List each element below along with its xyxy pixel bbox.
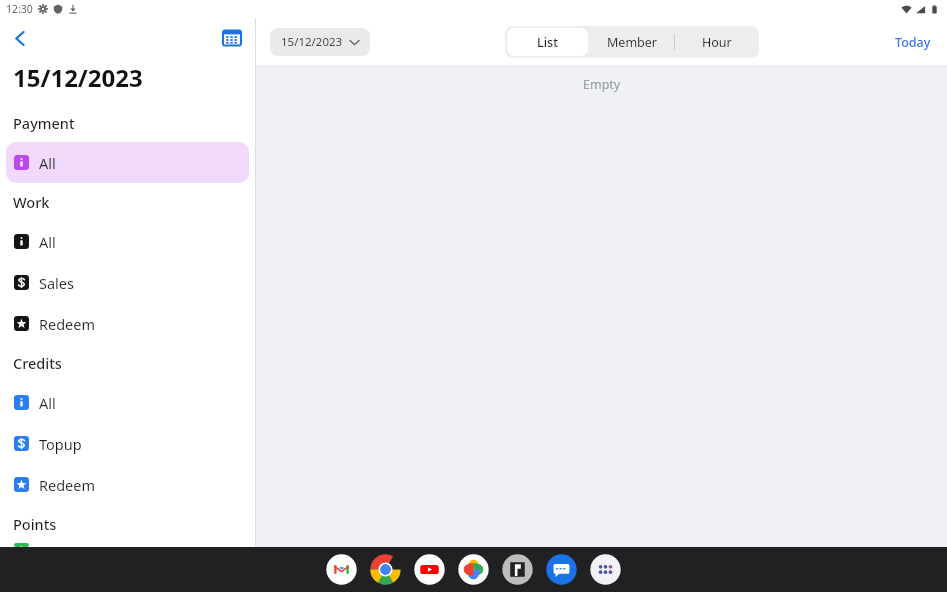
- button[interactable]: YouTube: [413, 553, 446, 586]
- button[interactable]: All: [6, 543, 249, 547]
- staticText: Empty: [583, 76, 621, 93]
- button[interactable]: All: [6, 221, 249, 262]
- button[interactable]: Photos: [457, 553, 490, 586]
- staticText: Payment: [13, 113, 75, 133]
- staticText: Member: [607, 34, 657, 51]
- button[interactable]: Today: [891, 30, 935, 55]
- button[interactable]: All: [6, 142, 249, 183]
- staticText: All: [39, 393, 56, 413]
- staticText: 15/12/2023: [13, 61, 143, 94]
- staticText: List: [537, 34, 558, 51]
- staticText: All: [39, 232, 56, 252]
- staticText: Today: [895, 34, 931, 51]
- staticText: Redeem: [39, 475, 96, 495]
- button[interactable]: Messages: [545, 553, 578, 586]
- button[interactable]: Files: [501, 553, 534, 586]
- button[interactable]: Topup: [6, 423, 249, 464]
- button[interactable]: Hour: [675, 26, 759, 58]
- button[interactable]: Calendar: [217, 23, 247, 53]
- staticText: 12:30: [6, 2, 33, 16]
- button[interactable]: Member: [590, 26, 674, 58]
- staticText: Sales: [39, 273, 74, 293]
- button[interactable]: Redeem: [6, 464, 249, 505]
- staticText: Credits: [13, 353, 62, 373]
- button[interactable]: All apps: [589, 553, 622, 586]
- staticText: 15/12/2023: [281, 34, 343, 50]
- staticText: All: [39, 153, 56, 173]
- button[interactable]: Back: [4, 22, 36, 54]
- button[interactable]: Sales: [6, 262, 249, 303]
- button[interactable]: Gmail: [325, 553, 358, 586]
- button[interactable]: List: [507, 28, 588, 56]
- button[interactable]: All: [6, 382, 249, 423]
- button[interactable]: 15/12/2023: [270, 28, 370, 56]
- staticText: Redeem: [39, 314, 96, 334]
- button[interactable]: Redeem: [6, 303, 249, 344]
- staticText: Work: [13, 192, 50, 212]
- staticText: Points: [13, 514, 57, 534]
- button[interactable]: Chrome: [369, 553, 402, 586]
- staticText: Topup: [39, 434, 82, 454]
- staticText: Hour: [702, 34, 732, 51]
